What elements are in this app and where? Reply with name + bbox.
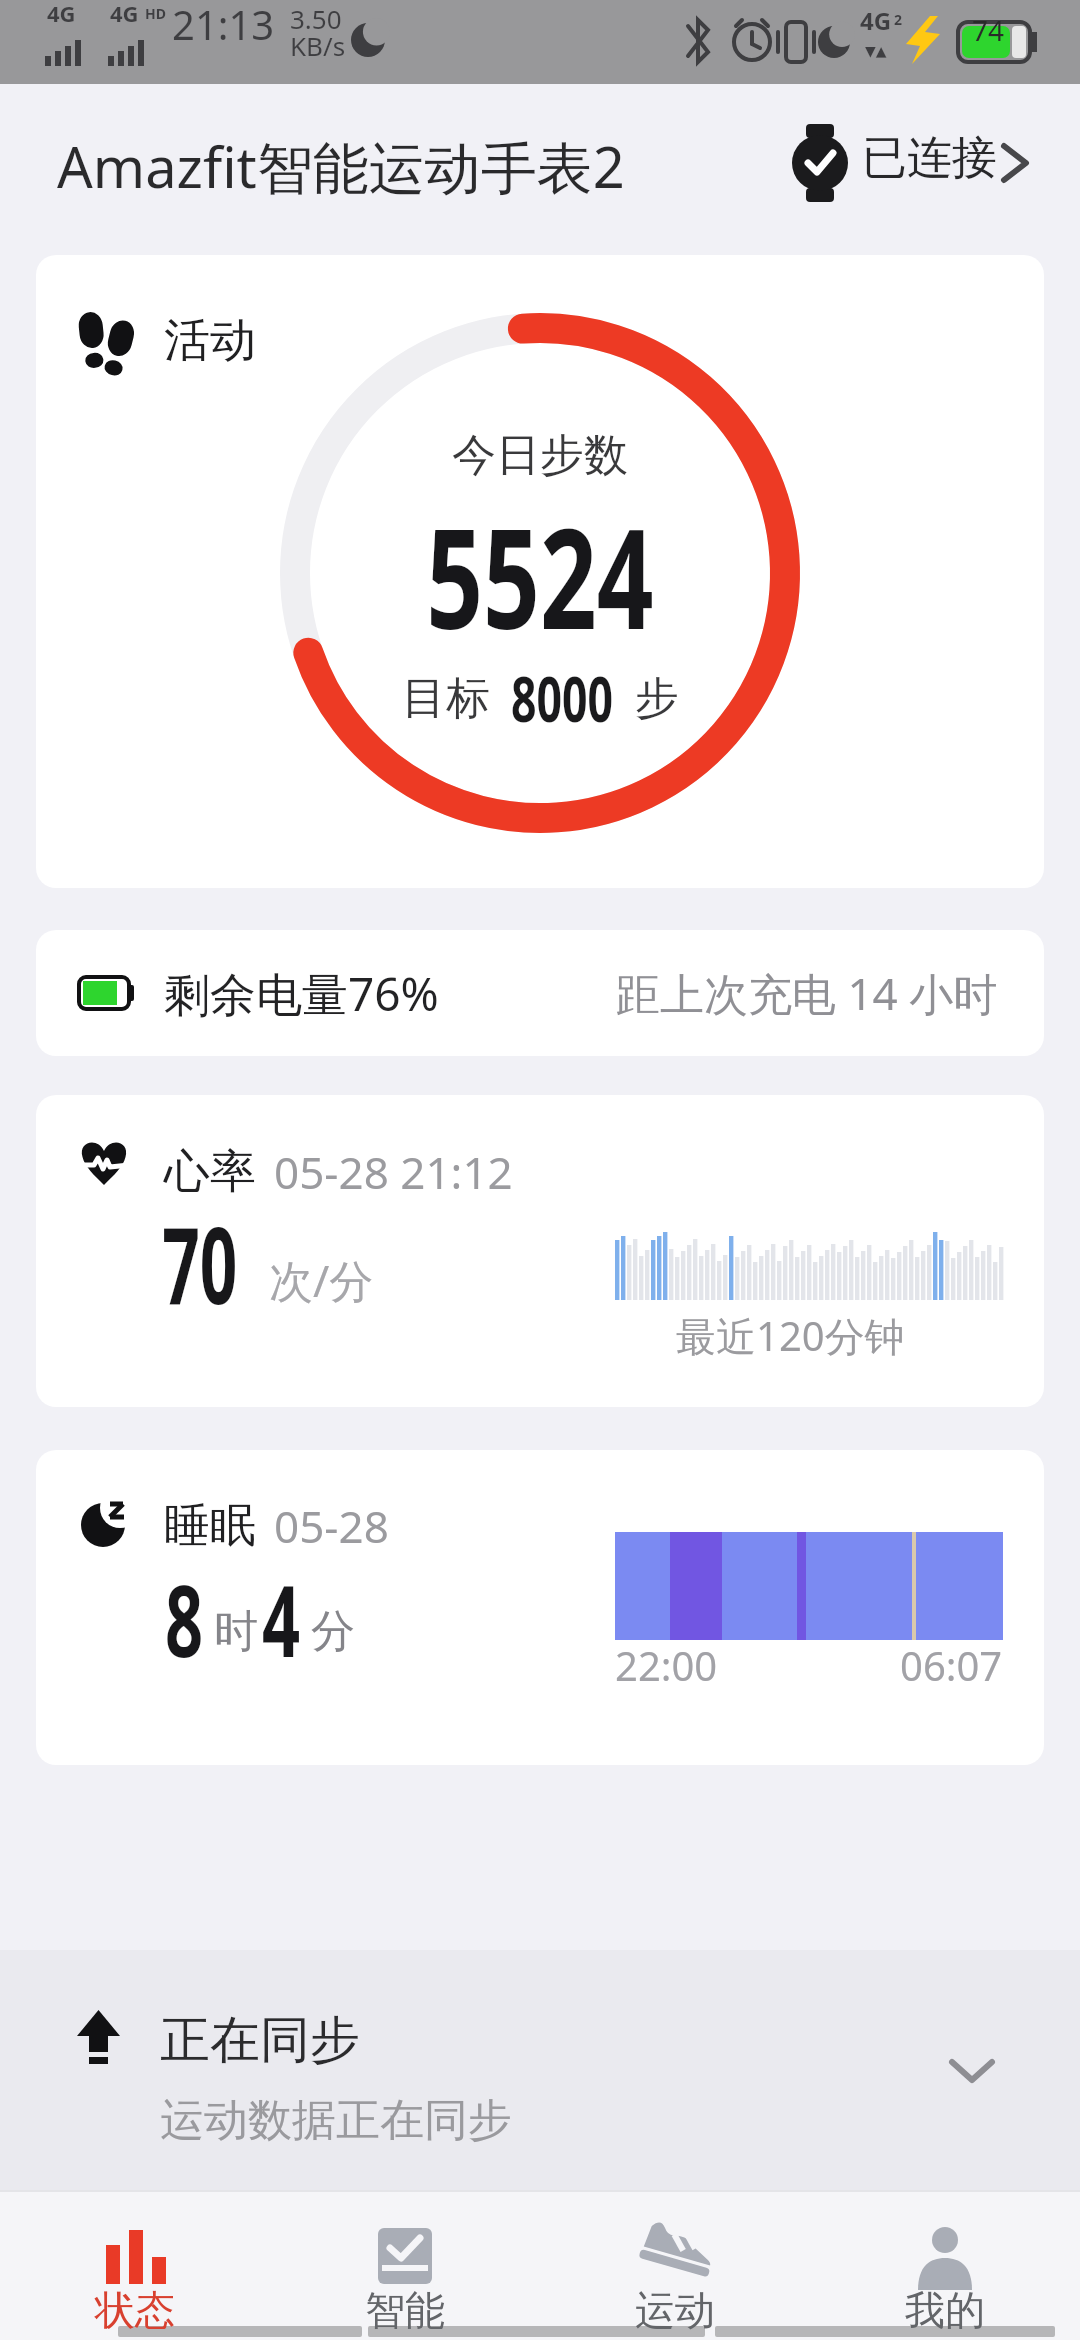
button[interactable]: [270, 2190, 540, 2340]
staticText: 4G: [47, 0, 76, 28]
staticText: 最近120分钟: [676, 1308, 905, 1363]
button[interactable]: 心率: [36, 1095, 1044, 1407]
staticText: 次/分: [269, 1250, 374, 1310]
staticText: 已连接: [862, 130, 997, 187]
staticText: 2: [894, 10, 903, 29]
staticText: HD: [145, 4, 166, 23]
staticText: 运动数据正在同步: [160, 2093, 512, 2148]
staticText: 70: [162, 1191, 238, 1335]
button[interactable]: 睡眠: [36, 1450, 1044, 1765]
staticText: 4: [262, 1552, 301, 1685]
staticText: 4G: [860, 4, 892, 37]
staticText: 正在同步: [160, 2009, 360, 2072]
staticText: 我的: [905, 2285, 985, 2335]
staticText: 分: [311, 1604, 355, 1659]
button[interactable]: [540, 2190, 810, 2340]
staticText: 今日步数: [452, 428, 628, 483]
staticText: 4G: [110, 0, 139, 28]
staticText: 3.50: [290, 1, 342, 36]
staticText: 距上次充电 14 小时: [616, 963, 998, 1023]
staticText: 智能: [365, 2285, 445, 2335]
staticText: 睡眠: [164, 1497, 256, 1555]
button[interactable]: 正在同步: [0, 1950, 1080, 2190]
staticText: Amazfit智能运动手表2: [57, 128, 625, 204]
staticText: 21:13: [172, 0, 275, 51]
staticText: 运动: [635, 2285, 715, 2335]
staticText: 活动: [164, 312, 256, 370]
staticText: 时: [214, 1604, 258, 1659]
staticText: 目标: [402, 671, 490, 726]
staticText: 状态: [95, 2285, 175, 2335]
staticText: ▼▲: [865, 43, 887, 59]
button[interactable]: [810, 2190, 1080, 2340]
staticText: 05-28 21:12: [274, 1142, 513, 1202]
staticText: 74: [972, 11, 1005, 49]
button[interactable]: [0, 2190, 270, 2340]
staticText: 8: [165, 1552, 204, 1685]
staticText: 剩余电量76%: [164, 962, 439, 1025]
staticText: 8000: [511, 656, 613, 740]
staticText: 步: [635, 671, 679, 726]
staticText: 22:00: [615, 1638, 718, 1692]
staticText: 心率: [164, 1143, 256, 1201]
button[interactable]: 活动: [36, 255, 1044, 888]
staticText: KB/s: [290, 28, 346, 63]
staticText: 06:07: [900, 1638, 1003, 1692]
button[interactable]: 剩余电量76%: [36, 930, 1044, 1056]
staticText: 5524: [426, 481, 654, 669]
staticText: 05-28: [274, 1496, 389, 1556]
button[interactable]: 已连接: [780, 110, 1050, 220]
